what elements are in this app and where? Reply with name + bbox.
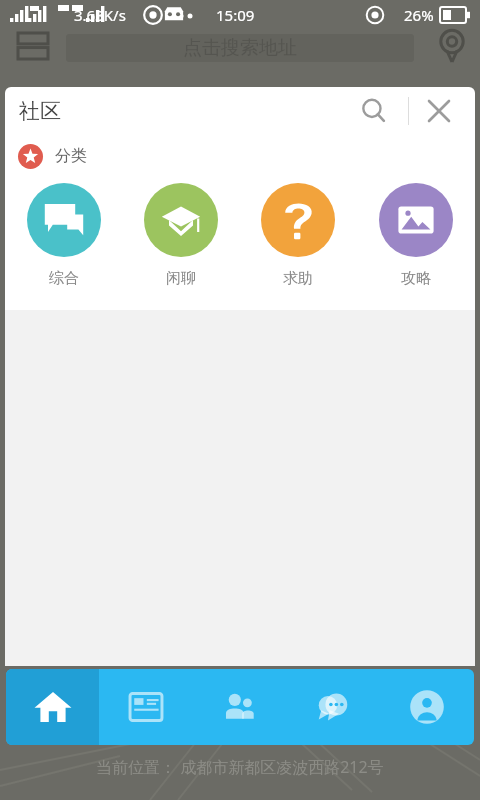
staticText: 26% (404, 5, 434, 25)
staticText: 社区 (19, 98, 61, 124)
staticText: 分类 (55, 146, 87, 166)
button[interactable]: 求助 (239, 183, 357, 288)
button[interactable]: Profile (380, 669, 474, 745)
staticText: 当前位置： 成都市新都区凌波西路212号 (96, 756, 384, 778)
staticText: 综合 (49, 269, 79, 288)
staticText: 闲聊 (166, 269, 196, 288)
staticText: 点击搜索地址 (183, 36, 297, 60)
button[interactable]: Contacts (192, 669, 286, 745)
button[interactable]: 攻略 (357, 183, 475, 288)
button[interactable]: Search (351, 88, 397, 134)
button[interactable]: Close (417, 89, 461, 133)
button[interactable]: 综合 (5, 183, 122, 288)
button[interactable]: Messages (286, 669, 380, 745)
staticText: 攻略 (401, 269, 431, 288)
button[interactable]: Home (6, 669, 99, 745)
staticText: 15:09 (216, 5, 255, 25)
button[interactable]: 闲聊 (122, 183, 239, 288)
staticText: 求助 (283, 269, 313, 288)
staticText: 3.63K/s (74, 5, 126, 25)
button[interactable]: News (99, 669, 192, 745)
